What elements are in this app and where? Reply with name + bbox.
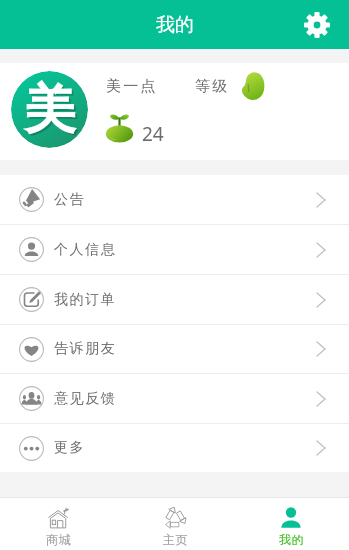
staticText: 24 (142, 121, 164, 147)
button[interactable]: 更多 (0, 424, 349, 472)
staticText: 个人信息 (54, 241, 117, 259)
staticText: 商城 (46, 532, 71, 547)
staticText: 我的 (279, 532, 304, 547)
button[interactable]: 意见反馈 (0, 374, 349, 423)
staticText: 等级 (195, 77, 230, 96)
button[interactable]: 我的 (233, 498, 349, 550)
button[interactable]: 公告 (0, 175, 349, 224)
staticText: 美一点 (106, 77, 158, 96)
staticText: 主页 (163, 532, 188, 547)
button[interactable]: 主页 (117, 498, 233, 550)
staticText: 美 (24, 77, 76, 143)
staticText: 告诉朋友 (54, 340, 117, 358)
button[interactable]: 美 (11, 71, 88, 148)
button[interactable]: Settings (298, 6, 336, 44)
staticText: 我的 (156, 13, 194, 37)
button[interactable]: 商城 (0, 498, 117, 550)
button[interactable]: 个人信息 (0, 225, 349, 274)
button[interactable]: 我的订单 (0, 275, 349, 324)
button[interactable]: 告诉朋友 (0, 325, 349, 373)
staticText: 更多 (54, 439, 86, 457)
staticText: 美 (26, 79, 78, 145)
staticText: 意见反馈 (54, 390, 117, 408)
staticText: 公告 (54, 191, 86, 209)
staticText: 我的订单 (54, 291, 117, 309)
